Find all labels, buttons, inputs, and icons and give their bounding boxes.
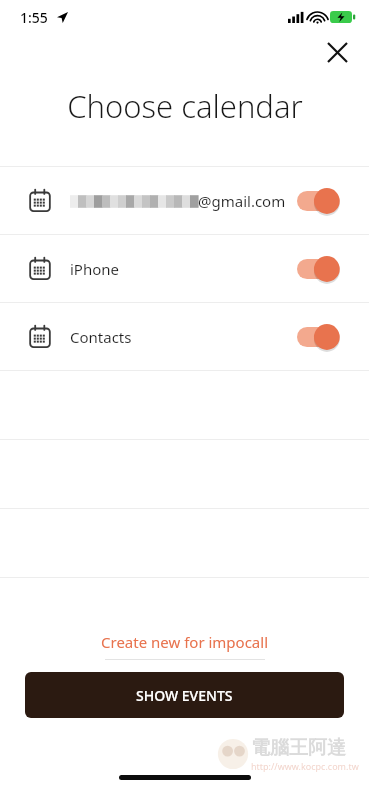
staticText: @gmail.com	[198, 191, 286, 211]
staticText: Create new for impocall	[101, 632, 269, 652]
button[interactable]: Contacts	[0, 303, 369, 370]
staticText: SHOW EVENTS	[136, 686, 233, 705]
button[interactable]: Create new for impocall	[0, 625, 369, 659]
staticText: Choose calendar	[67, 85, 303, 127]
staticText: http://www.kocpc.com.tw	[251, 760, 359, 772]
button[interactable]: iPhone	[0, 235, 369, 302]
button[interactable]: @gmail.com	[0, 167, 369, 234]
staticText: iPhone	[70, 259, 120, 279]
staticText: 1:55	[20, 8, 48, 27]
button[interactable]: Close	[319, 34, 355, 70]
button[interactable]: SHOW EVENTS	[25, 672, 344, 718]
staticText: 電腦王阿達	[251, 736, 346, 760]
staticText: Contacts	[70, 327, 132, 347]
